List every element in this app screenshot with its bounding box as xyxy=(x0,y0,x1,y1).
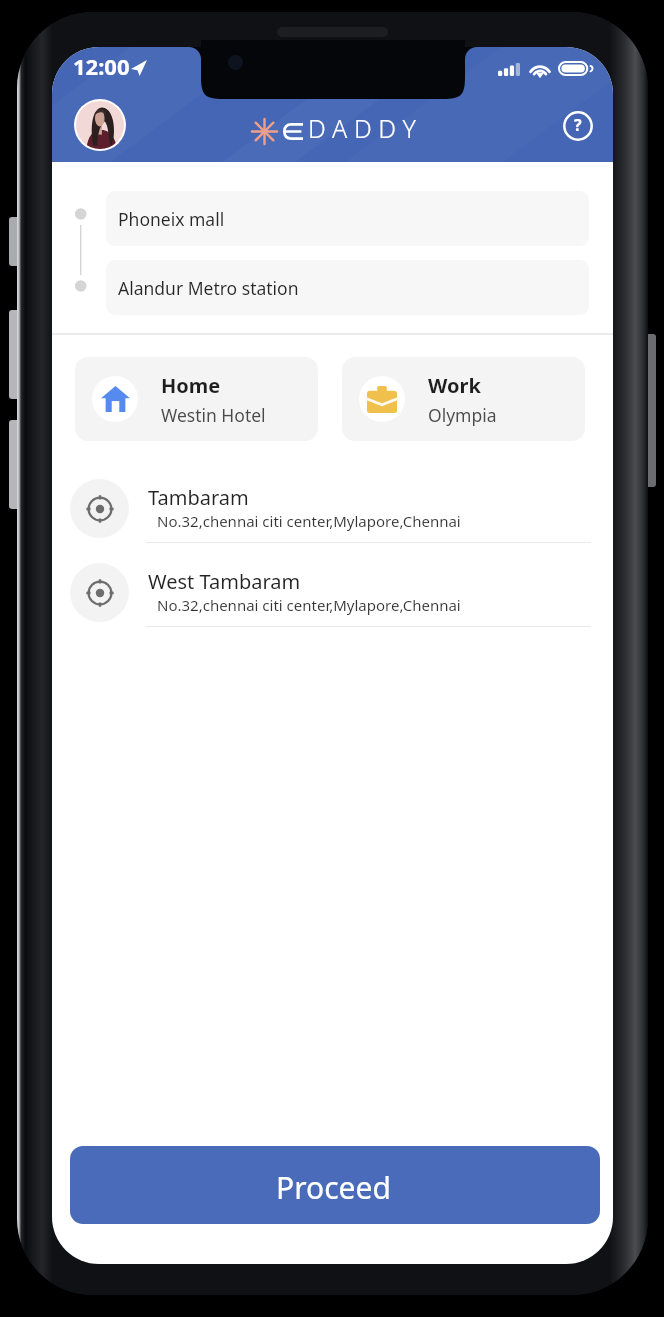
staticText: Alandur Metro station xyxy=(118,276,299,300)
staticText: Home xyxy=(161,372,221,399)
button[interactable]: Help xyxy=(560,108,596,144)
staticText: Proceed xyxy=(276,1167,391,1208)
button[interactable]: Profile xyxy=(76,101,124,149)
staticText: DADDY xyxy=(308,111,423,145)
staticText: No.32,chennai citi center,Mylapore,Chenn… xyxy=(157,595,461,615)
button[interactable]: Phoneix mall xyxy=(106,191,589,246)
staticText: Westin Hotel xyxy=(161,403,266,427)
staticText: 12:00 xyxy=(73,51,130,81)
button[interactable]: Tambaram xyxy=(52,467,613,551)
staticText: Olympia xyxy=(428,403,497,427)
button[interactable]: West Tambaram xyxy=(52,551,613,635)
staticText: West Tambaram xyxy=(148,568,301,595)
button[interactable]: Alandur Metro station xyxy=(106,260,589,315)
staticText: Phoneix mall xyxy=(118,207,225,231)
staticText: Tambaram xyxy=(148,484,249,511)
staticText: Work xyxy=(428,372,481,399)
button[interactable]: Work xyxy=(342,357,585,441)
staticText: ? xyxy=(574,114,582,136)
button[interactable]: Proceed xyxy=(70,1146,600,1224)
staticText: No.32,chennai citi center,Mylapore,Chenn… xyxy=(157,511,461,531)
button[interactable]: Home xyxy=(75,357,318,441)
